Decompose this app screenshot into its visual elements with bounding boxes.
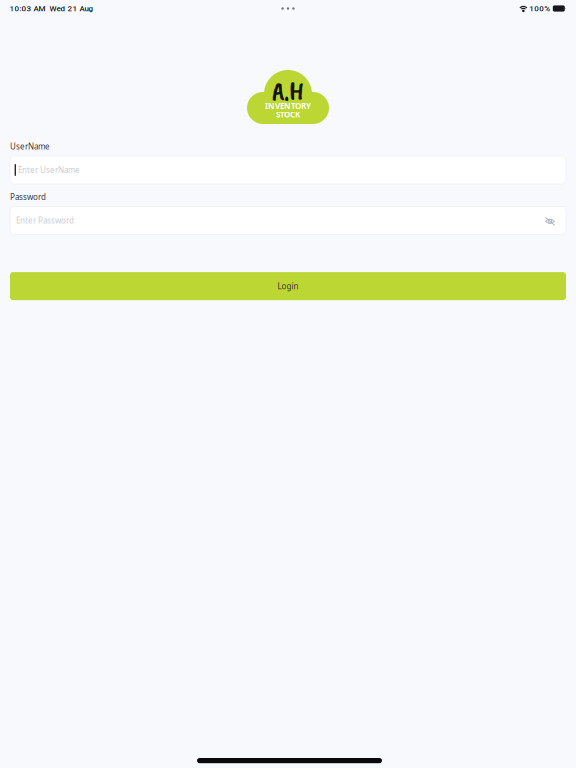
button[interactable]: Enter Password bbox=[10, 206, 566, 234]
button[interactable]: Show password bbox=[542, 211, 558, 230]
staticText: A.H bbox=[272, 75, 304, 108]
staticText: UserName bbox=[10, 141, 50, 152]
staticText: STOCK bbox=[276, 109, 300, 120]
button[interactable]: Login bbox=[10, 272, 566, 300]
staticText: Wed 21 Aug bbox=[49, 4, 93, 13]
staticText: 100% bbox=[529, 4, 550, 13]
button[interactable]: Enter UserName bbox=[10, 156, 566, 184]
staticText: 10:03 AM bbox=[9, 4, 45, 13]
staticText: Enter Password bbox=[16, 215, 74, 226]
staticText: Password bbox=[10, 192, 46, 202]
staticText: INVENTORY bbox=[265, 101, 311, 111]
staticText: Login bbox=[277, 281, 298, 291]
staticText: Enter UserName bbox=[18, 165, 80, 175]
